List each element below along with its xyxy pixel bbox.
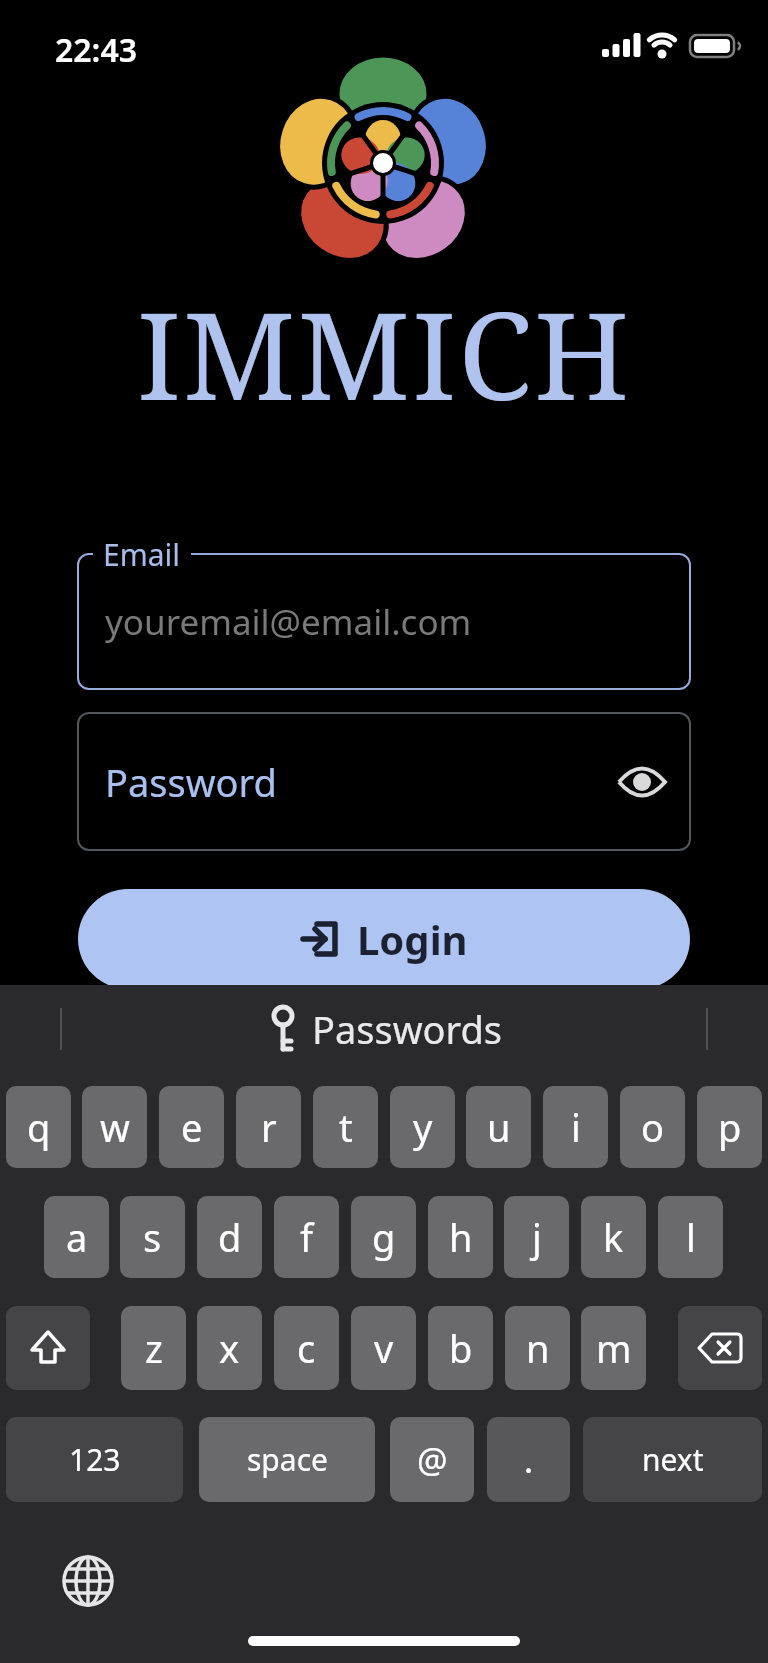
button[interactable]: l: [658, 1196, 723, 1278]
button[interactable]: t: [313, 1086, 378, 1168]
button[interactable]: z: [121, 1306, 186, 1390]
button[interactable]: c: [274, 1306, 339, 1390]
button[interactable]: [6, 1306, 90, 1390]
button[interactable]: d: [197, 1196, 262, 1278]
button[interactable]: a: [44, 1196, 109, 1278]
button[interactable]: @: [390, 1417, 474, 1502]
staticText: c: [297, 1322, 316, 1374]
button[interactable]: f: [274, 1196, 339, 1278]
staticText: l: [686, 1211, 696, 1263]
button[interactable]: j: [504, 1196, 569, 1278]
staticText: t: [339, 1101, 353, 1153]
staticText: r: [261, 1101, 277, 1153]
button[interactable]: w: [82, 1086, 147, 1168]
staticText: y: [413, 1101, 433, 1153]
button[interactable]: .: [487, 1417, 570, 1502]
staticText: Email: [103, 534, 181, 575]
button[interactable]: Passwords: [0, 985, 768, 1073]
staticText: e: [181, 1101, 203, 1153]
button[interactable]: n: [505, 1306, 570, 1390]
staticText: j: [532, 1211, 542, 1263]
button[interactable]: Login: [78, 889, 690, 989]
button[interactable]: i: [543, 1086, 608, 1168]
button[interactable]: h: [428, 1196, 493, 1278]
staticText: Login: [357, 912, 468, 966]
staticText: p: [718, 1101, 742, 1153]
button[interactable]: 123: [6, 1417, 183, 1502]
staticText: space: [247, 1439, 328, 1480]
staticText: x: [219, 1322, 240, 1374]
staticText: youremail@email.com: [105, 598, 472, 646]
button[interactable]: y: [390, 1086, 455, 1168]
staticText: w: [100, 1101, 130, 1153]
staticText: o: [641, 1101, 664, 1153]
staticText: 123: [69, 1439, 121, 1480]
button[interactable]: m: [581, 1306, 646, 1390]
staticText: Passwords: [312, 1003, 503, 1055]
staticText: z: [145, 1322, 163, 1374]
staticText: g: [372, 1211, 396, 1263]
button[interactable]: v: [351, 1306, 416, 1390]
button[interactable]: g: [351, 1196, 416, 1278]
staticText: IMMICH: [137, 272, 632, 435]
button[interactable]: q: [6, 1086, 71, 1168]
button[interactable]: r: [236, 1086, 301, 1168]
staticText: q: [27, 1101, 51, 1153]
staticText: n: [526, 1322, 550, 1374]
button[interactable]: Password: [77, 712, 691, 851]
button[interactable]: k: [581, 1196, 646, 1278]
button[interactable]: o: [620, 1086, 685, 1168]
button[interactable]: next: [583, 1417, 762, 1502]
button[interactable]: s: [120, 1196, 185, 1278]
staticText: @: [417, 1437, 448, 1483]
button[interactable]: space: [199, 1417, 375, 1502]
staticText: 22:43: [55, 28, 138, 72]
staticText: d: [218, 1211, 242, 1263]
staticText: v: [374, 1322, 394, 1374]
button[interactable]: u: [466, 1086, 531, 1168]
staticText: s: [143, 1211, 162, 1263]
staticText: next: [642, 1439, 704, 1480]
button[interactable]: p: [697, 1086, 762, 1168]
staticText: m: [596, 1322, 632, 1374]
button[interactable]: youremail@email.com: [77, 553, 691, 690]
staticText: u: [487, 1101, 511, 1153]
staticText: i: [571, 1101, 581, 1153]
staticText: f: [300, 1211, 314, 1263]
button[interactable]: x: [197, 1306, 262, 1390]
staticText: k: [603, 1211, 624, 1263]
button[interactable]: b: [428, 1306, 493, 1390]
staticText: h: [449, 1211, 473, 1263]
button[interactable]: e: [159, 1086, 224, 1168]
staticText: a: [66, 1211, 88, 1263]
button[interactable]: [62, 1555, 114, 1607]
staticText: b: [449, 1322, 473, 1374]
staticText: Password: [105, 756, 277, 808]
button[interactable]: [678, 1306, 762, 1390]
staticText: .: [524, 1437, 534, 1483]
